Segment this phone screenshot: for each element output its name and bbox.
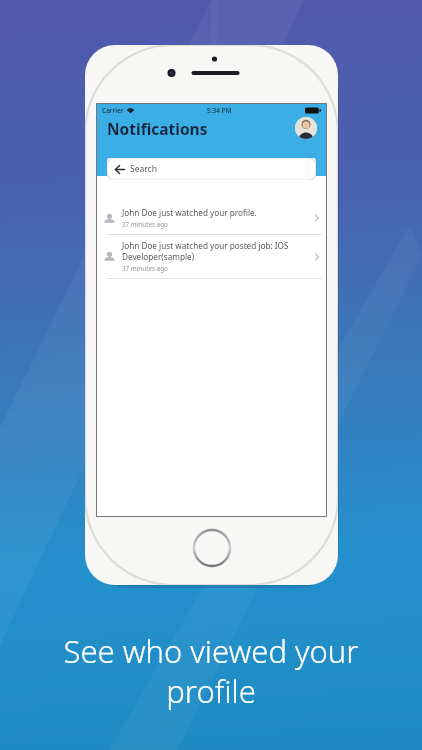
staticText: John Doe just watched your posted job: I… (122, 240, 289, 251)
staticText: 5:34 PM (207, 106, 232, 115)
staticText: Notifications (107, 118, 208, 139)
staticText: See who viewed your profile (24, 630, 398, 712)
staticText: John Doe just watched your profile. (122, 207, 257, 218)
button[interactable]: Search (107, 158, 316, 180)
staticText: Search (130, 163, 157, 175)
staticText: Carrier (102, 106, 124, 115)
button[interactable]: John Doe just watched your posted job: I… (97, 235, 326, 278)
staticText: 37 minutes ago (122, 264, 168, 273)
button[interactable]: Profile (295, 117, 317, 139)
staticText: Developer(sample) (122, 251, 195, 262)
button[interactable]: John Doe just watched your profile. (97, 202, 326, 234)
staticText: 37 minutes ago (122, 220, 168, 229)
